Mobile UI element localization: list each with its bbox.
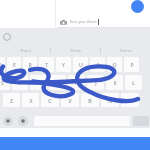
button[interactable]: I — [90, 57, 105, 72]
button[interactable]: X — [22, 93, 39, 107]
button[interactable]: O — [107, 57, 122, 72]
button[interactable]: B — [81, 93, 99, 107]
button[interactable]: F — [30, 75, 47, 90]
staticText: Y — [62, 61, 65, 68]
button[interactable]: Camera — [57, 16, 150, 28]
staticText: There — [20, 48, 31, 53]
button[interactable]: Z — [3, 93, 20, 107]
staticText: D — [18, 79, 22, 86]
button[interactable]: H — [68, 75, 85, 90]
button[interactable]: Camera — [59, 18, 67, 26]
button[interactable]: E — [7, 57, 21, 72]
button[interactable]: S — [0, 75, 10, 90]
staticText: R — [28, 61, 32, 68]
staticText: B — [88, 97, 92, 104]
staticText: O — [112, 61, 117, 68]
staticText: S — [1, 79, 4, 86]
button[interactable]: T — [39, 57, 54, 72]
button[interactable]: C — [41, 93, 59, 107]
button[interactable]: Therm — [101, 45, 150, 56]
staticText: W — [0, 61, 1, 68]
staticText: N — [108, 97, 112, 104]
button[interactable]: There — [0, 45, 50, 56]
button[interactable]: M — [121, 93, 139, 107]
staticText: T — [45, 61, 48, 68]
staticText: Z — [10, 97, 13, 104]
button[interactable]: Three — [51, 45, 100, 56]
staticText: K — [113, 79, 117, 86]
button[interactable]: V — [61, 93, 79, 107]
button[interactable]: R — [23, 57, 37, 72]
button[interactable]: L — [125, 75, 142, 90]
button[interactable]: Send — [131, 0, 144, 13]
staticText: J — [95, 79, 97, 86]
button[interactable]: Emoji — [18, 116, 28, 126]
button[interactable]: J — [87, 75, 104, 90]
staticText: F — [37, 79, 40, 86]
staticText: V — [68, 97, 72, 104]
staticText: I — [97, 61, 99, 68]
staticText: Three — [70, 48, 81, 53]
staticText: H — [75, 79, 79, 86]
staticText: U — [79, 61, 83, 68]
staticText: X — [29, 97, 33, 104]
staticText: G — [56, 79, 60, 86]
button[interactable]: U — [73, 57, 88, 72]
staticText: C — [48, 97, 52, 104]
button[interactable]: D — [12, 75, 28, 90]
button[interactable]: Y — [56, 57, 71, 72]
staticText: P — [130, 61, 134, 68]
staticText: E — [13, 61, 16, 68]
staticText: L — [132, 79, 135, 86]
button[interactable]: N — [101, 93, 119, 107]
staticText: M — [128, 97, 133, 104]
button[interactable]: K — [106, 75, 123, 90]
button[interactable]: G — [49, 75, 66, 90]
button[interactable]: W — [0, 57, 5, 72]
staticText: Therm — [119, 48, 132, 53]
staticText: See you there — [70, 19, 97, 25]
button[interactable]: P — [124, 57, 139, 72]
button[interactable]: Symbols — [3, 116, 13, 126]
button[interactable]: Google Assistant — [1, 31, 13, 43]
